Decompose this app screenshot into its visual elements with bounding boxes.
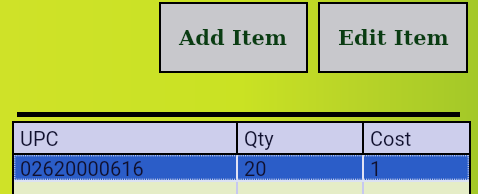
- staticText: Qty: [244, 127, 274, 150]
- button[interactable]: Edit Item: [320, 4, 466, 71]
- staticText: Cost: [370, 127, 412, 150]
- staticText: 1: [370, 157, 382, 180]
- staticText: Edit Item: [338, 25, 449, 50]
- staticText: 20: [244, 157, 267, 180]
- staticText: 02620000616: [20, 157, 144, 180]
- button[interactable]: Add Item: [161, 4, 306, 71]
- staticText: Add Item: [179, 25, 288, 50]
- staticText: UPC: [20, 127, 59, 150]
